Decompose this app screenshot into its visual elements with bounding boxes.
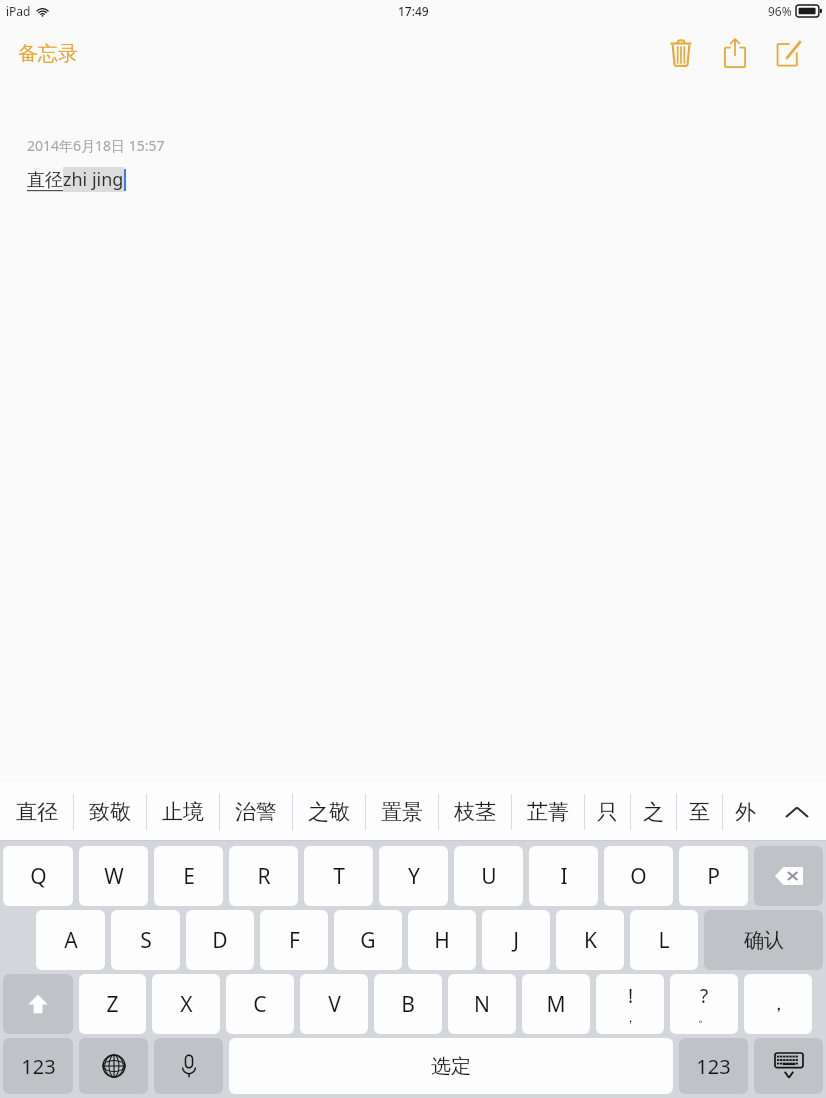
button[interactable]: Dictation xyxy=(154,1038,223,1094)
button[interactable]: F xyxy=(260,910,328,970)
button[interactable]: 备忘录 xyxy=(14,37,82,70)
staticText: X xyxy=(180,990,193,1019)
staticText: ， xyxy=(624,1009,637,1025)
button[interactable]: ? xyxy=(670,974,738,1034)
staticText: 芷菁 xyxy=(527,799,569,825)
button[interactable]: Compose xyxy=(762,28,816,78)
button[interactable]: A xyxy=(36,910,105,970)
button[interactable]: Q xyxy=(3,846,73,906)
button[interactable]: V xyxy=(300,974,368,1034)
button[interactable]: 123 xyxy=(3,1038,73,1094)
staticText: T xyxy=(333,862,345,891)
button[interactable]: 止境 xyxy=(146,783,219,841)
button[interactable]: X xyxy=(152,974,220,1034)
staticText: 置景 xyxy=(381,799,423,825)
button[interactable]: 外 xyxy=(722,783,768,841)
staticText: 17:49 xyxy=(398,3,429,19)
staticText: 确认 xyxy=(744,928,784,953)
staticText: L xyxy=(658,926,670,955)
button[interactable]: J xyxy=(482,910,550,970)
staticText: P xyxy=(707,862,720,891)
staticText: 123 xyxy=(696,1053,731,1080)
staticText: 直径 xyxy=(16,799,58,825)
button[interactable]: E xyxy=(154,846,223,906)
staticText: 只 xyxy=(597,799,618,825)
button[interactable]: L xyxy=(630,910,698,970)
button[interactable]: Expand candidates xyxy=(768,783,826,841)
button[interactable]: 之敬 xyxy=(292,783,365,841)
staticText: A xyxy=(64,926,78,955)
button[interactable]: U xyxy=(454,846,523,906)
button[interactable]: T xyxy=(304,846,373,906)
staticText: D xyxy=(212,926,228,955)
button[interactable]: Backspace xyxy=(754,846,823,906)
button[interactable]: 确认 xyxy=(704,910,823,970)
staticText: V xyxy=(328,990,341,1019)
staticText: ， xyxy=(769,992,788,1016)
button[interactable]: 治警 xyxy=(219,783,292,841)
staticText: 备忘录 xyxy=(18,41,78,66)
button[interactable]: M xyxy=(522,974,590,1034)
staticText: 之敬 xyxy=(308,799,350,825)
staticText: Y xyxy=(408,862,420,891)
button[interactable]: Shift xyxy=(3,974,73,1034)
button[interactable]: C xyxy=(226,974,294,1034)
staticText: 止境 xyxy=(162,799,204,825)
staticText: 96% xyxy=(768,3,792,19)
button[interactable]: ， xyxy=(744,974,812,1034)
staticText: 直径 xyxy=(27,169,63,192)
staticText: M xyxy=(546,990,566,1019)
button[interactable]: N xyxy=(448,974,516,1034)
button[interactable]: O xyxy=(604,846,673,906)
button[interactable]: B xyxy=(374,974,442,1034)
button[interactable]: Delete xyxy=(654,28,708,78)
button[interactable]: K xyxy=(556,910,624,970)
button[interactable]: 置景 xyxy=(365,783,438,841)
staticText: C xyxy=(253,990,267,1019)
button[interactable]: W xyxy=(79,846,148,906)
staticText: W xyxy=(104,862,124,891)
button[interactable]: 123 xyxy=(679,1038,748,1094)
staticText: K xyxy=(584,926,597,955)
button[interactable]: P xyxy=(679,846,748,906)
staticText: G xyxy=(360,926,376,955)
staticText: ? xyxy=(700,983,709,1009)
button[interactable]: Share xyxy=(708,28,762,78)
button[interactable]: 芷菁 xyxy=(511,783,584,841)
button[interactable]: D xyxy=(186,910,254,970)
staticText: H xyxy=(434,926,450,955)
staticText: N xyxy=(474,990,490,1019)
button[interactable]: I xyxy=(529,846,598,906)
button[interactable]: G xyxy=(334,910,402,970)
button[interactable]: 至 xyxy=(676,783,722,841)
button[interactable]: Hide keyboard xyxy=(754,1038,823,1094)
button[interactable]: 枝茎 xyxy=(438,783,511,841)
button[interactable]: 之 xyxy=(630,783,676,841)
staticText: F xyxy=(289,926,300,955)
staticText: B xyxy=(401,990,415,1019)
staticText: 致敬 xyxy=(89,799,131,825)
staticText: 治警 xyxy=(235,799,277,825)
staticText: O xyxy=(630,862,647,891)
button[interactable]: 致敬 xyxy=(73,783,146,841)
button[interactable]: 选定 xyxy=(229,1038,673,1094)
button[interactable]: 直径 xyxy=(0,783,73,841)
staticText: U xyxy=(481,862,497,891)
staticText: 2014年6月18日 15:57 xyxy=(27,136,165,155)
button[interactable]: ! xyxy=(596,974,664,1034)
button[interactable]: Switch keyboard xyxy=(79,1038,148,1094)
staticText: J xyxy=(513,926,519,955)
button[interactable]: H xyxy=(408,910,476,970)
button[interactable]: R xyxy=(229,846,298,906)
staticText: I xyxy=(560,862,568,891)
button[interactable]: Z xyxy=(79,974,146,1034)
staticText: 选定 xyxy=(431,1054,471,1079)
button[interactable]: Y xyxy=(379,846,448,906)
button[interactable]: 只 xyxy=(584,783,630,841)
staticText: R xyxy=(257,862,271,891)
staticText: S xyxy=(140,926,152,955)
staticText: ! xyxy=(628,983,634,1009)
staticText: 。 xyxy=(698,1009,711,1025)
staticText: Z xyxy=(106,990,119,1019)
button[interactable]: S xyxy=(111,910,180,970)
